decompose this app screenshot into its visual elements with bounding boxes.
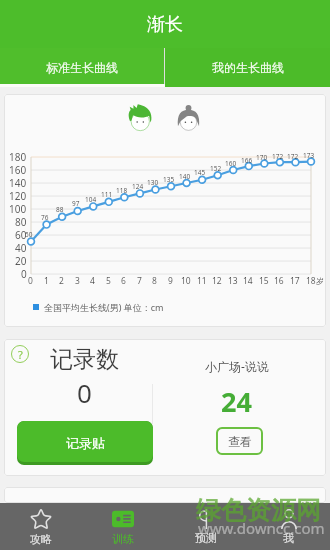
staticText: 111 bbox=[101, 190, 113, 199]
staticText: 8 bbox=[152, 275, 157, 287]
staticText: 0 bbox=[28, 275, 33, 287]
staticText: 13 bbox=[228, 275, 238, 287]
staticText: 2 bbox=[59, 275, 64, 287]
staticText: 岁 bbox=[316, 276, 324, 286]
staticText: 11 bbox=[197, 275, 207, 287]
staticText: 140 bbox=[179, 172, 191, 181]
staticText: 18 bbox=[306, 275, 316, 287]
staticText: 记录数 bbox=[50, 345, 119, 374]
staticText: 166 bbox=[241, 156, 253, 165]
staticText: 20 bbox=[15, 254, 27, 268]
button[interactable]: 记录贴 bbox=[17, 421, 153, 465]
staticText: 60 bbox=[15, 228, 27, 242]
staticText: 160 bbox=[225, 159, 237, 168]
staticText: 1 bbox=[44, 275, 49, 287]
staticText: 173 bbox=[303, 151, 315, 160]
button[interactable]: Girl bbox=[173, 102, 204, 133]
button[interactable]: 预测 bbox=[164, 503, 247, 550]
staticText: 40 bbox=[15, 241, 27, 255]
staticText: 172 bbox=[272, 152, 284, 161]
button[interactable]: 攻略 bbox=[0, 503, 82, 550]
staticText: 80 bbox=[15, 215, 27, 229]
staticText: 绿色资源网 bbox=[196, 495, 321, 526]
staticText: 50 bbox=[25, 230, 33, 239]
staticText: 17 bbox=[290, 275, 300, 287]
staticText: 24 bbox=[221, 383, 252, 420]
button[interactable]: 查看 bbox=[216, 427, 263, 455]
staticText: 7 bbox=[137, 275, 142, 287]
staticText: 140 bbox=[9, 176, 27, 190]
staticText: 118 bbox=[116, 186, 128, 195]
staticText: 152 bbox=[210, 164, 222, 173]
staticText: 渐长 bbox=[147, 13, 183, 36]
staticText: 小广场-说说 bbox=[205, 358, 269, 374]
staticText: 训练 bbox=[112, 532, 134, 546]
staticText: 攻略 bbox=[30, 532, 52, 546]
staticText: 标准生长曲线 bbox=[46, 60, 118, 75]
staticText: 16 bbox=[274, 275, 284, 287]
button[interactable]: 标准生长曲线 bbox=[0, 48, 164, 87]
staticText: 76 bbox=[41, 213, 49, 222]
staticText: 88 bbox=[56, 205, 64, 214]
staticText: 10 bbox=[181, 275, 191, 287]
staticText: 9 bbox=[168, 275, 173, 287]
staticText: 12 bbox=[212, 275, 222, 287]
staticText: 0 bbox=[21, 267, 27, 281]
staticText: 172 bbox=[287, 152, 299, 161]
staticText: 14 bbox=[243, 275, 253, 287]
staticText: 我的生长曲线 bbox=[212, 60, 284, 75]
staticText: 170 bbox=[256, 153, 268, 162]
staticText: 3 bbox=[75, 275, 80, 287]
staticText: 记录贴 bbox=[66, 435, 105, 451]
staticText: 4 bbox=[90, 275, 95, 287]
button[interactable]: 我 bbox=[247, 503, 330, 550]
staticText: 5 bbox=[106, 275, 111, 287]
staticText: 180 bbox=[9, 150, 27, 164]
staticText: 120 bbox=[9, 189, 27, 203]
staticText: ? bbox=[18, 347, 23, 362]
button[interactable]: Help bbox=[11, 345, 29, 363]
staticText: 124 bbox=[132, 182, 144, 191]
staticText: 130 bbox=[147, 178, 159, 187]
staticText: 135 bbox=[163, 175, 175, 184]
staticText: 104 bbox=[85, 195, 97, 204]
staticText: 全国平均生长线(男) 单位：cm bbox=[44, 301, 164, 313]
staticText: 0 bbox=[77, 375, 92, 410]
staticText: 97 bbox=[72, 199, 80, 208]
staticText: 15 bbox=[259, 275, 269, 287]
staticText: 查看 bbox=[228, 434, 252, 449]
staticText: 6 bbox=[121, 275, 126, 287]
staticText: 160 bbox=[9, 163, 27, 177]
staticText: 145 bbox=[194, 168, 206, 177]
staticText: 我 bbox=[283, 531, 294, 545]
staticText: 100 bbox=[9, 202, 27, 216]
button[interactable]: 我的生长曲线 bbox=[165, 48, 330, 87]
button[interactable]: Boy bbox=[126, 102, 157, 133]
staticText: 预测 bbox=[195, 531, 217, 545]
staticText: www.downcc.com bbox=[198, 518, 325, 538]
button[interactable]: 训练 bbox=[82, 503, 164, 550]
